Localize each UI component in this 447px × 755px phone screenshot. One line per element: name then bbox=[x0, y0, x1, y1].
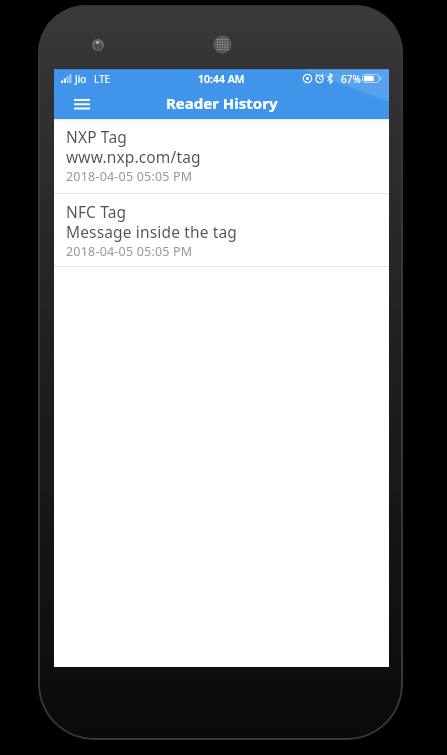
button[interactable] bbox=[69, 91, 94, 116]
staticText: LTE bbox=[94, 72, 111, 86]
staticText: 10:44 AM bbox=[198, 72, 245, 86]
staticText: 2018-04-05 05:05 PM bbox=[66, 168, 193, 185]
staticText: NFC Tag bbox=[66, 201, 127, 222]
staticText: www.nxp.com/tag bbox=[66, 146, 201, 167]
staticText: NXP Tag bbox=[66, 126, 127, 147]
staticText: Jio bbox=[75, 72, 87, 86]
staticText: 67% bbox=[341, 72, 361, 86]
button[interactable]: NFC Tag bbox=[54, 194, 389, 267]
button[interactable]: NXP Tag bbox=[54, 119, 389, 194]
staticText: Message inside the tag bbox=[66, 221, 238, 242]
staticText: Reader History bbox=[166, 93, 278, 113]
staticText: 2018-04-05 05:05 PM bbox=[66, 243, 193, 260]
